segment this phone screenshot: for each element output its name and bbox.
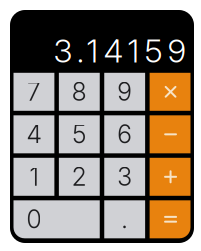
button[interactable]: 3 <box>104 158 145 196</box>
button[interactable]: Subtract <box>150 115 190 153</box>
staticText: 3 <box>117 162 132 192</box>
button[interactable]: 4 <box>13 115 54 153</box>
button[interactable]: Multiply <box>150 73 190 111</box>
staticText: 6 <box>117 119 132 149</box>
staticText: 4 <box>26 119 41 149</box>
staticText: 3.14159 <box>53 32 186 70</box>
staticText: 7 <box>27 77 41 107</box>
staticText: 2 <box>72 162 87 192</box>
staticText: . <box>121 204 128 234</box>
button[interactable]: 0 <box>13 200 100 238</box>
staticText: 5 <box>72 119 86 149</box>
staticText: 8 <box>72 77 87 107</box>
staticText: 1 <box>29 162 38 192</box>
staticText: 9 <box>117 77 132 107</box>
button[interactable]: . <box>104 200 145 238</box>
button[interactable]: 7 <box>13 73 54 111</box>
button[interactable]: 2 <box>59 158 100 196</box>
button[interactable]: Equals <box>150 200 190 238</box>
button[interactable]: 6 <box>104 115 145 153</box>
button[interactable]: 5 <box>59 115 100 153</box>
button[interactable]: 8 <box>59 73 100 111</box>
button[interactable]: 1 <box>13 158 54 196</box>
button[interactable]: 9 <box>104 73 145 111</box>
staticText: 0 <box>26 204 41 234</box>
button[interactable]: Add <box>150 158 190 196</box>
